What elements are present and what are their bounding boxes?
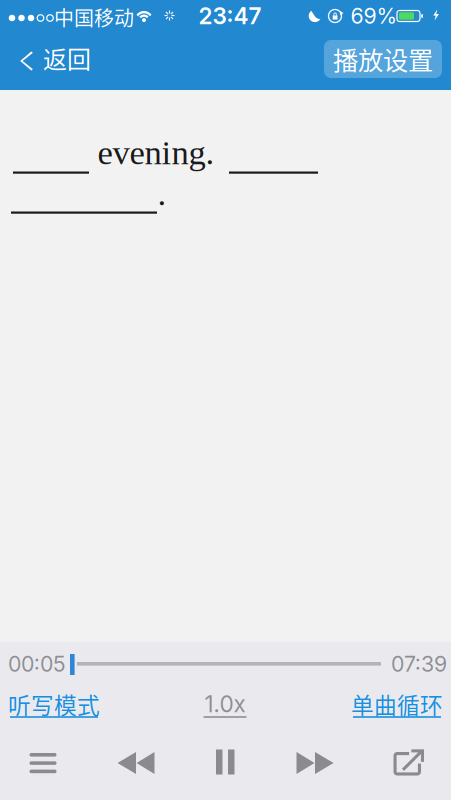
- staticText: 返回: [43, 41, 91, 75]
- button[interactable]: 返回: [0, 32, 98, 90]
- staticText: evening.: [97, 133, 214, 172]
- button[interactable]: 听写模式: [5, 692, 103, 730]
- staticText: 07:39: [391, 651, 447, 677]
- button[interactable]: 单曲循环: [348, 692, 446, 730]
- button[interactable]: Share: [367, 738, 447, 790]
- staticText: .: [157, 174, 166, 213]
- button[interactable]: Fast forward: [275, 737, 355, 789]
- button[interactable]: Pause: [185, 736, 265, 788]
- staticText: 23:47: [198, 2, 261, 30]
- staticText: 播放设置: [333, 41, 433, 77]
- staticText: 单曲循环: [351, 688, 443, 720]
- button[interactable]: Playlist: [3, 738, 83, 790]
- staticText: 听写模式: [8, 688, 100, 720]
- button[interactable]: 播放设置: [324, 40, 442, 78]
- button[interactable]: 1.0x: [197, 692, 253, 730]
- button[interactable]: Rewind: [96, 737, 176, 789]
- staticText: 中国移动: [54, 2, 134, 31]
- staticText: 00:05: [8, 651, 66, 677]
- staticText: 1.0x: [204, 690, 245, 718]
- staticText: 69%: [350, 3, 397, 29]
